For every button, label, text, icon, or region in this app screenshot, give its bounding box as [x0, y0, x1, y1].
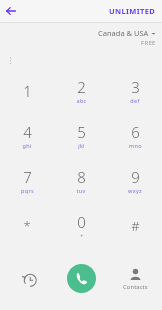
staticText: FREE	[141, 39, 156, 47]
staticText: def	[130, 97, 140, 104]
staticText: *	[23, 217, 31, 235]
staticText: 9	[131, 167, 140, 187]
button[interactable]: 9	[108, 158, 162, 203]
staticText: mno	[129, 142, 142, 149]
staticText: UNLIMITED	[109, 6, 156, 16]
staticText: tuv	[76, 187, 86, 194]
button[interactable]: 1	[0, 68, 54, 113]
button[interactable]: 0	[54, 203, 108, 248]
button[interactable]: 8	[54, 158, 108, 203]
button[interactable]: #	[108, 203, 162, 248]
staticText: 7	[23, 167, 32, 187]
staticText: jkl	[78, 142, 85, 149]
staticText: 2	[77, 77, 86, 97]
staticText: 0	[77, 212, 86, 232]
button[interactable]: Canada & USA	[0, 23, 162, 52]
staticText: wxyz	[128, 187, 142, 194]
button[interactable]: Call history	[16, 266, 42, 292]
staticText: 6	[131, 122, 140, 142]
staticText: 4	[23, 122, 32, 142]
staticText: abc	[76, 97, 87, 104]
staticText: pqrs	[21, 187, 34, 194]
button[interactable]: Back	[3, 3, 19, 19]
button[interactable]: 6	[108, 113, 162, 158]
staticText: 3	[131, 77, 140, 97]
button[interactable]: UNLIMITED	[103, 3, 162, 19]
staticText: Canada & USA	[98, 28, 149, 38]
button[interactable]: Call	[67, 264, 96, 293]
staticText: 8	[77, 167, 86, 187]
button[interactable]: 2	[54, 68, 108, 113]
staticText: +	[80, 232, 84, 239]
staticText: 1	[23, 81, 32, 101]
staticText: ghi	[22, 142, 32, 149]
button[interactable]: Contacts	[121, 266, 150, 293]
staticText: #	[131, 217, 140, 235]
staticText: 5	[77, 122, 86, 142]
button[interactable]: 4	[0, 113, 54, 158]
staticText: Contacts	[123, 283, 148, 291]
button[interactable]: 7	[0, 158, 54, 203]
button[interactable]: 3	[108, 68, 162, 113]
button[interactable]: *	[0, 203, 54, 248]
button[interactable]: 5	[54, 113, 108, 158]
button[interactable]: More options	[4, 54, 17, 67]
